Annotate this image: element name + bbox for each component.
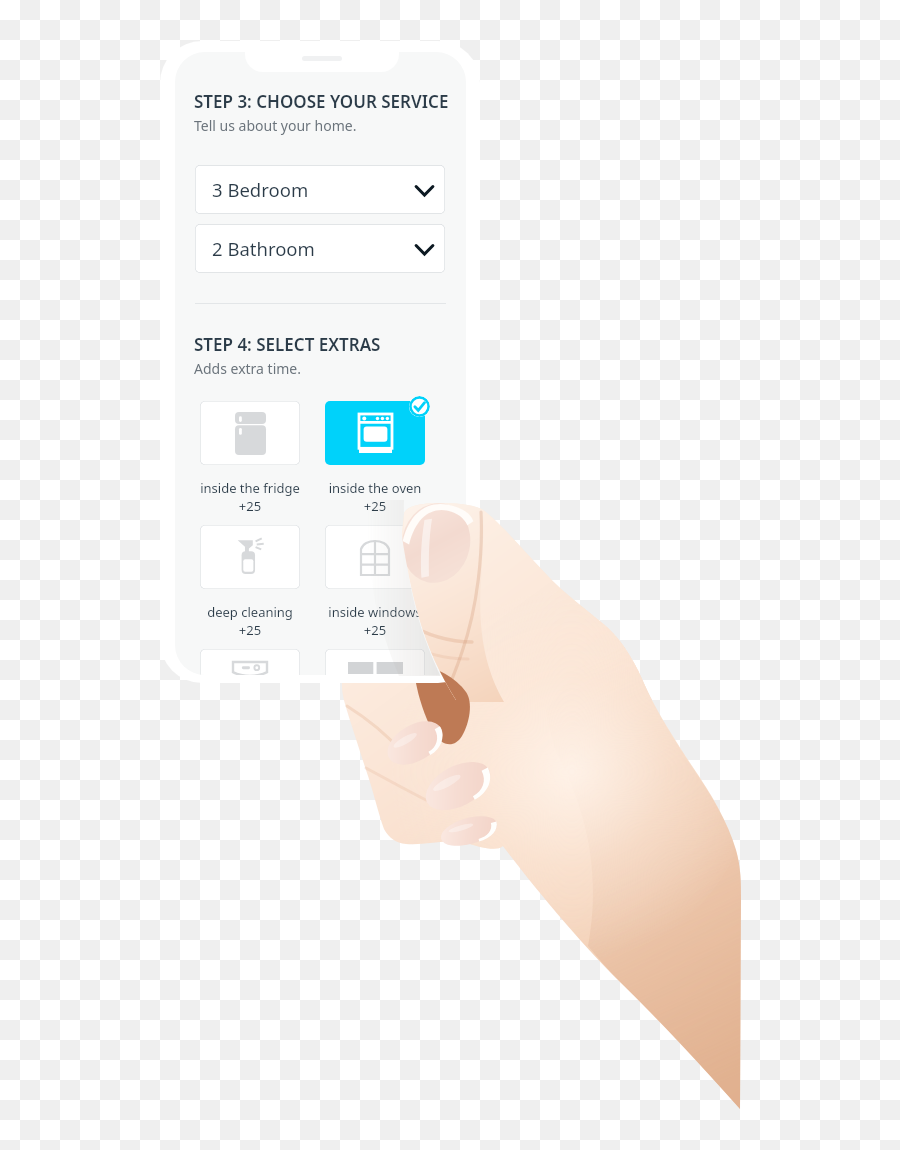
staticText: STEP 3: CHOOSE YOUR SERVICE [194, 90, 449, 113]
button[interactable]: inside the fridge [200, 401, 300, 515]
staticText: Tell us about your home. [194, 116, 357, 135]
button[interactable]: inside the oven [325, 401, 425, 515]
staticText: inside the oven [325, 479, 425, 497]
staticText: deep cleaning [200, 603, 300, 621]
staticText: inside the fridge [200, 479, 300, 497]
button[interactable]: 2 Bathroom [195, 224, 445, 273]
staticText: +25 [200, 621, 300, 639]
button[interactable]: extra option [200, 649, 300, 675]
staticText: +25 [325, 621, 425, 639]
staticText: 3 Bedroom [212, 177, 309, 202]
staticText: 2 Bathroom [212, 236, 315, 261]
button[interactable]: extra option [325, 649, 425, 675]
button[interactable]: inside windows [325, 525, 425, 639]
button[interactable]: 3 Bedroom [195, 165, 445, 214]
staticText: +25 [200, 497, 300, 515]
staticText: STEP 4: SELECT EXTRAS [194, 333, 381, 356]
staticText: Adds extra time. [194, 359, 301, 378]
staticText: +25 [325, 497, 425, 515]
button[interactable]: deep cleaning [200, 525, 300, 639]
staticText: inside windows [325, 603, 425, 621]
